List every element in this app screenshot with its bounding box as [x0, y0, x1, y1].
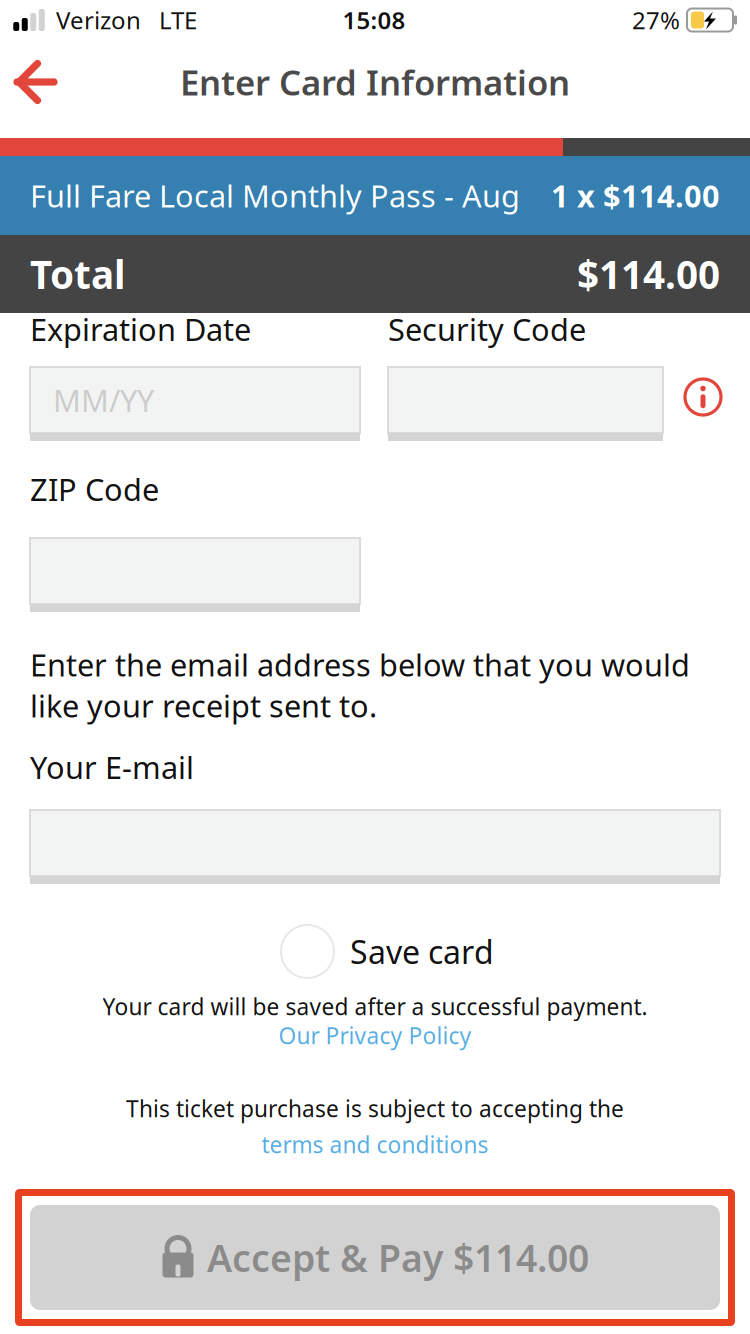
staticText: MM/YY — [53, 380, 154, 420]
staticText: Our Privacy Policy — [278, 1020, 471, 1050]
staticText: Expiration Date — [30, 309, 251, 349]
staticText: Enter Card Information — [180, 59, 570, 105]
staticText: 1 x $114.00 — [551, 175, 720, 216]
button[interactable]: Text field — [30, 810, 720, 884]
staticText: LTE — [159, 4, 197, 36]
button[interactable]: Back — [0, 46, 76, 118]
button[interactable]: Security code help — [681, 367, 740, 441]
staticText: terms and conditions — [261, 1129, 488, 1159]
staticText: like your receipt sent to. — [30, 685, 377, 726]
staticText: Your card will be saved after a successf… — [102, 991, 647, 1021]
staticText: Full Fare Local Monthly Pass - Aug — [30, 175, 520, 216]
staticText: Security Code — [388, 309, 586, 349]
staticText: This ticket purchase is subject to accep… — [126, 1093, 624, 1123]
staticText: 27% — [632, 4, 680, 36]
staticText: Total — [30, 248, 126, 300]
staticText: Verizon — [56, 4, 141, 36]
button[interactable]: Text field — [388, 367, 663, 441]
button[interactable]: terms and conditions — [0, 1130, 750, 1159]
staticText: ZIP Code — [30, 469, 159, 509]
button[interactable]: Accept & Pay $114.00 — [15, 1189, 735, 1326]
button[interactable]: Text field — [30, 538, 360, 612]
button[interactable]: Save card — [256, 925, 494, 978]
staticText: Accept & Pay $114.00 — [207, 1233, 589, 1282]
button[interactable]: MM/YY — [30, 367, 360, 441]
staticText: $114.00 — [577, 248, 720, 300]
staticText: 15:08 — [342, 4, 405, 36]
staticText: Your E-mail — [30, 747, 194, 787]
staticText: Save card — [350, 930, 494, 973]
staticText: Enter the email address below that you w… — [30, 644, 690, 685]
button[interactable]: Our Privacy Policy — [0, 1021, 750, 1050]
